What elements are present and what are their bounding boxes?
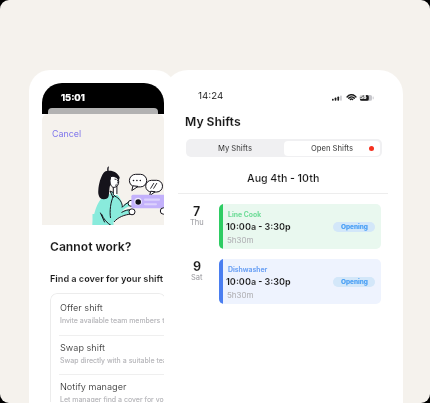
staticText: Let manager find a cover for you [60,395,164,402]
staticText: 14:24 [198,90,224,102]
button[interactable]: Cancel [52,128,82,139]
staticText: Notify manager [60,381,127,392]
staticText: Thu [190,218,204,227]
staticText: 7 [193,204,201,219]
staticText: 9 [193,259,202,274]
button[interactable]: Swap shift [50,333,164,372]
other: Signal, Wi-Fi and battery status [332,91,374,103]
staticText: Open Shifts [311,144,354,153]
button[interactable]: Open Shifts [284,141,380,156]
staticText: Swap directly with a suitable team [60,356,164,364]
staticText: 10:00a - 3:30p [226,276,291,287]
button[interactable]: Offer shift [50,293,164,335]
staticText: Offer shift [60,302,103,313]
button[interactable]: My Shifts [186,139,284,157]
staticText: 58 [360,94,367,100]
staticText: Swap shift [60,342,105,353]
staticText: Line Cook [228,210,262,218]
button[interactable]: 7 [178,204,388,249]
staticText: 15:01 [61,92,85,103]
staticText: My Shifts [218,144,252,153]
staticText: Opening [341,223,368,231]
staticText: Sat [191,273,203,282]
staticText: Aug 4th - 10th [247,172,320,185]
staticText: Opening [341,278,368,286]
staticText: Dishwasher [228,265,268,273]
staticText: Find a cover for your shift [50,273,164,284]
staticText: 5h30m [227,235,254,245]
button[interactable]: 9 [178,259,388,304]
staticText: My Shifts [185,114,241,129]
button[interactable]: Notify manager [50,372,164,402]
staticText: 10:00a - 3:30p [226,221,291,232]
staticText: Cannot work? [50,239,132,254]
staticText: Invite available team members to [60,316,164,324]
staticText: 5h30m [227,290,254,300]
